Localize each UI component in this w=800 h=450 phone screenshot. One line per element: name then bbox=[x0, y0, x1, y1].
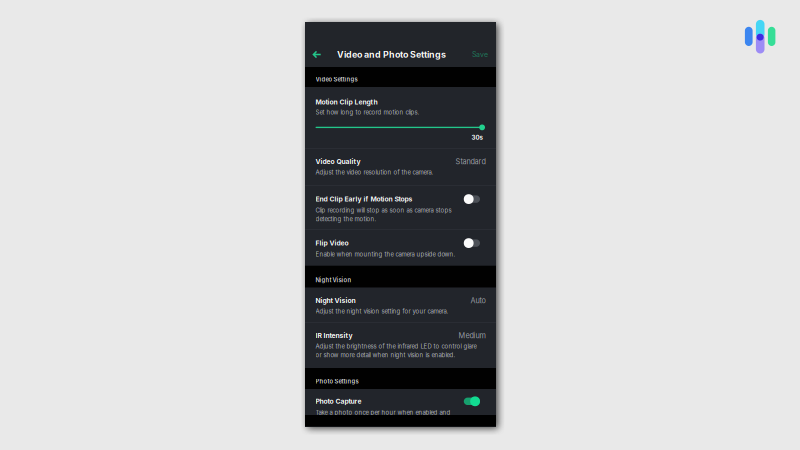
staticText: Standard bbox=[455, 157, 485, 166]
staticText: Video Quality bbox=[315, 157, 360, 166]
staticText: 30s bbox=[471, 134, 482, 141]
staticText: Flip Video bbox=[315, 239, 348, 247]
staticText: Auto bbox=[470, 296, 485, 305]
staticText: or show more detail when night vision is… bbox=[315, 351, 455, 359]
button[interactable]: Flip Video bbox=[305, 230, 496, 266]
staticText: Adjust the video resolution of the camer… bbox=[315, 169, 433, 176]
staticText: Night Vision bbox=[315, 296, 355, 305]
staticText: Night Vision bbox=[315, 277, 351, 284]
button[interactable]: IR Intensity bbox=[305, 323, 496, 368]
button[interactable]: Back bbox=[308, 43, 326, 66]
staticText: Photo Settings bbox=[315, 378, 358, 385]
staticText: Set how long to record motion clips. bbox=[315, 109, 419, 116]
staticText: Medium bbox=[458, 331, 485, 340]
button[interactable]: Photo Capture bbox=[305, 389, 496, 415]
staticText: detecting the motion. bbox=[315, 215, 376, 223]
staticText: IR Intensity bbox=[315, 331, 352, 340]
staticText: Video and Photo Settings bbox=[337, 49, 446, 60]
button[interactable]: Night Vision bbox=[305, 288, 496, 322]
staticText: Photo Capture bbox=[315, 397, 361, 405]
staticText: Enable when mounting the camera upside d… bbox=[315, 251, 455, 258]
staticText: Adjust the night vision setting for your… bbox=[315, 308, 448, 315]
staticText: Video Settings bbox=[315, 76, 357, 83]
staticText: Take a photo once per hour when enabled … bbox=[315, 409, 450, 416]
button[interactable]: End Clip Early if Motion Stops bbox=[305, 186, 496, 229]
staticText: Clip recording will stop as soon as came… bbox=[315, 207, 451, 214]
staticText: Motion Clip Length bbox=[315, 98, 377, 106]
staticText: Save bbox=[472, 50, 488, 59]
staticText: End Clip Early if Motion Stops bbox=[315, 195, 412, 203]
button[interactable]: Save bbox=[469, 43, 491, 66]
staticText: Adjust the brightness of the infrared LE… bbox=[315, 343, 476, 350]
button[interactable]: Video Quality bbox=[305, 149, 496, 185]
